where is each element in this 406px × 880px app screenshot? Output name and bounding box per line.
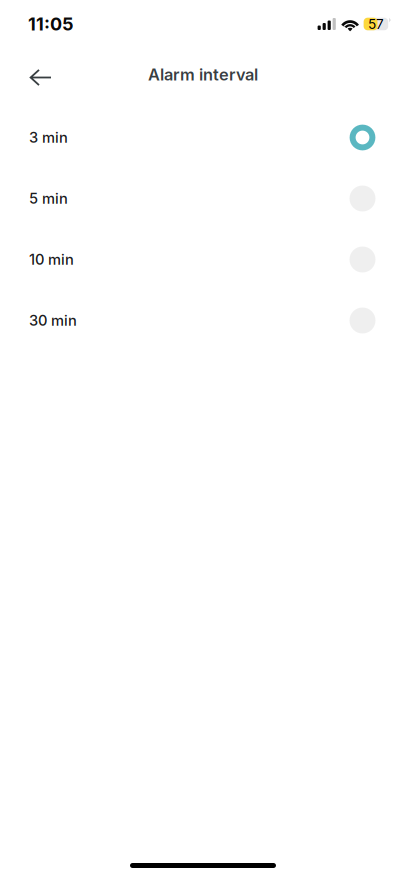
button[interactable]: 3 min — [0, 107, 406, 168]
staticText: 30 min — [29, 312, 77, 329]
staticText: 57 — [368, 16, 384, 32]
staticText: 10 min — [29, 251, 74, 268]
staticText: 3 min — [29, 129, 68, 146]
button[interactable]: Back — [0, 52, 67, 96]
button[interactable]: 5 min — [0, 168, 406, 229]
staticText: 5 min — [29, 190, 68, 207]
staticText: 11:05 — [28, 13, 74, 35]
button[interactable]: 30 min — [0, 290, 406, 351]
staticText: Alarm interval — [148, 65, 258, 84]
button[interactable]: 10 min — [0, 229, 406, 290]
